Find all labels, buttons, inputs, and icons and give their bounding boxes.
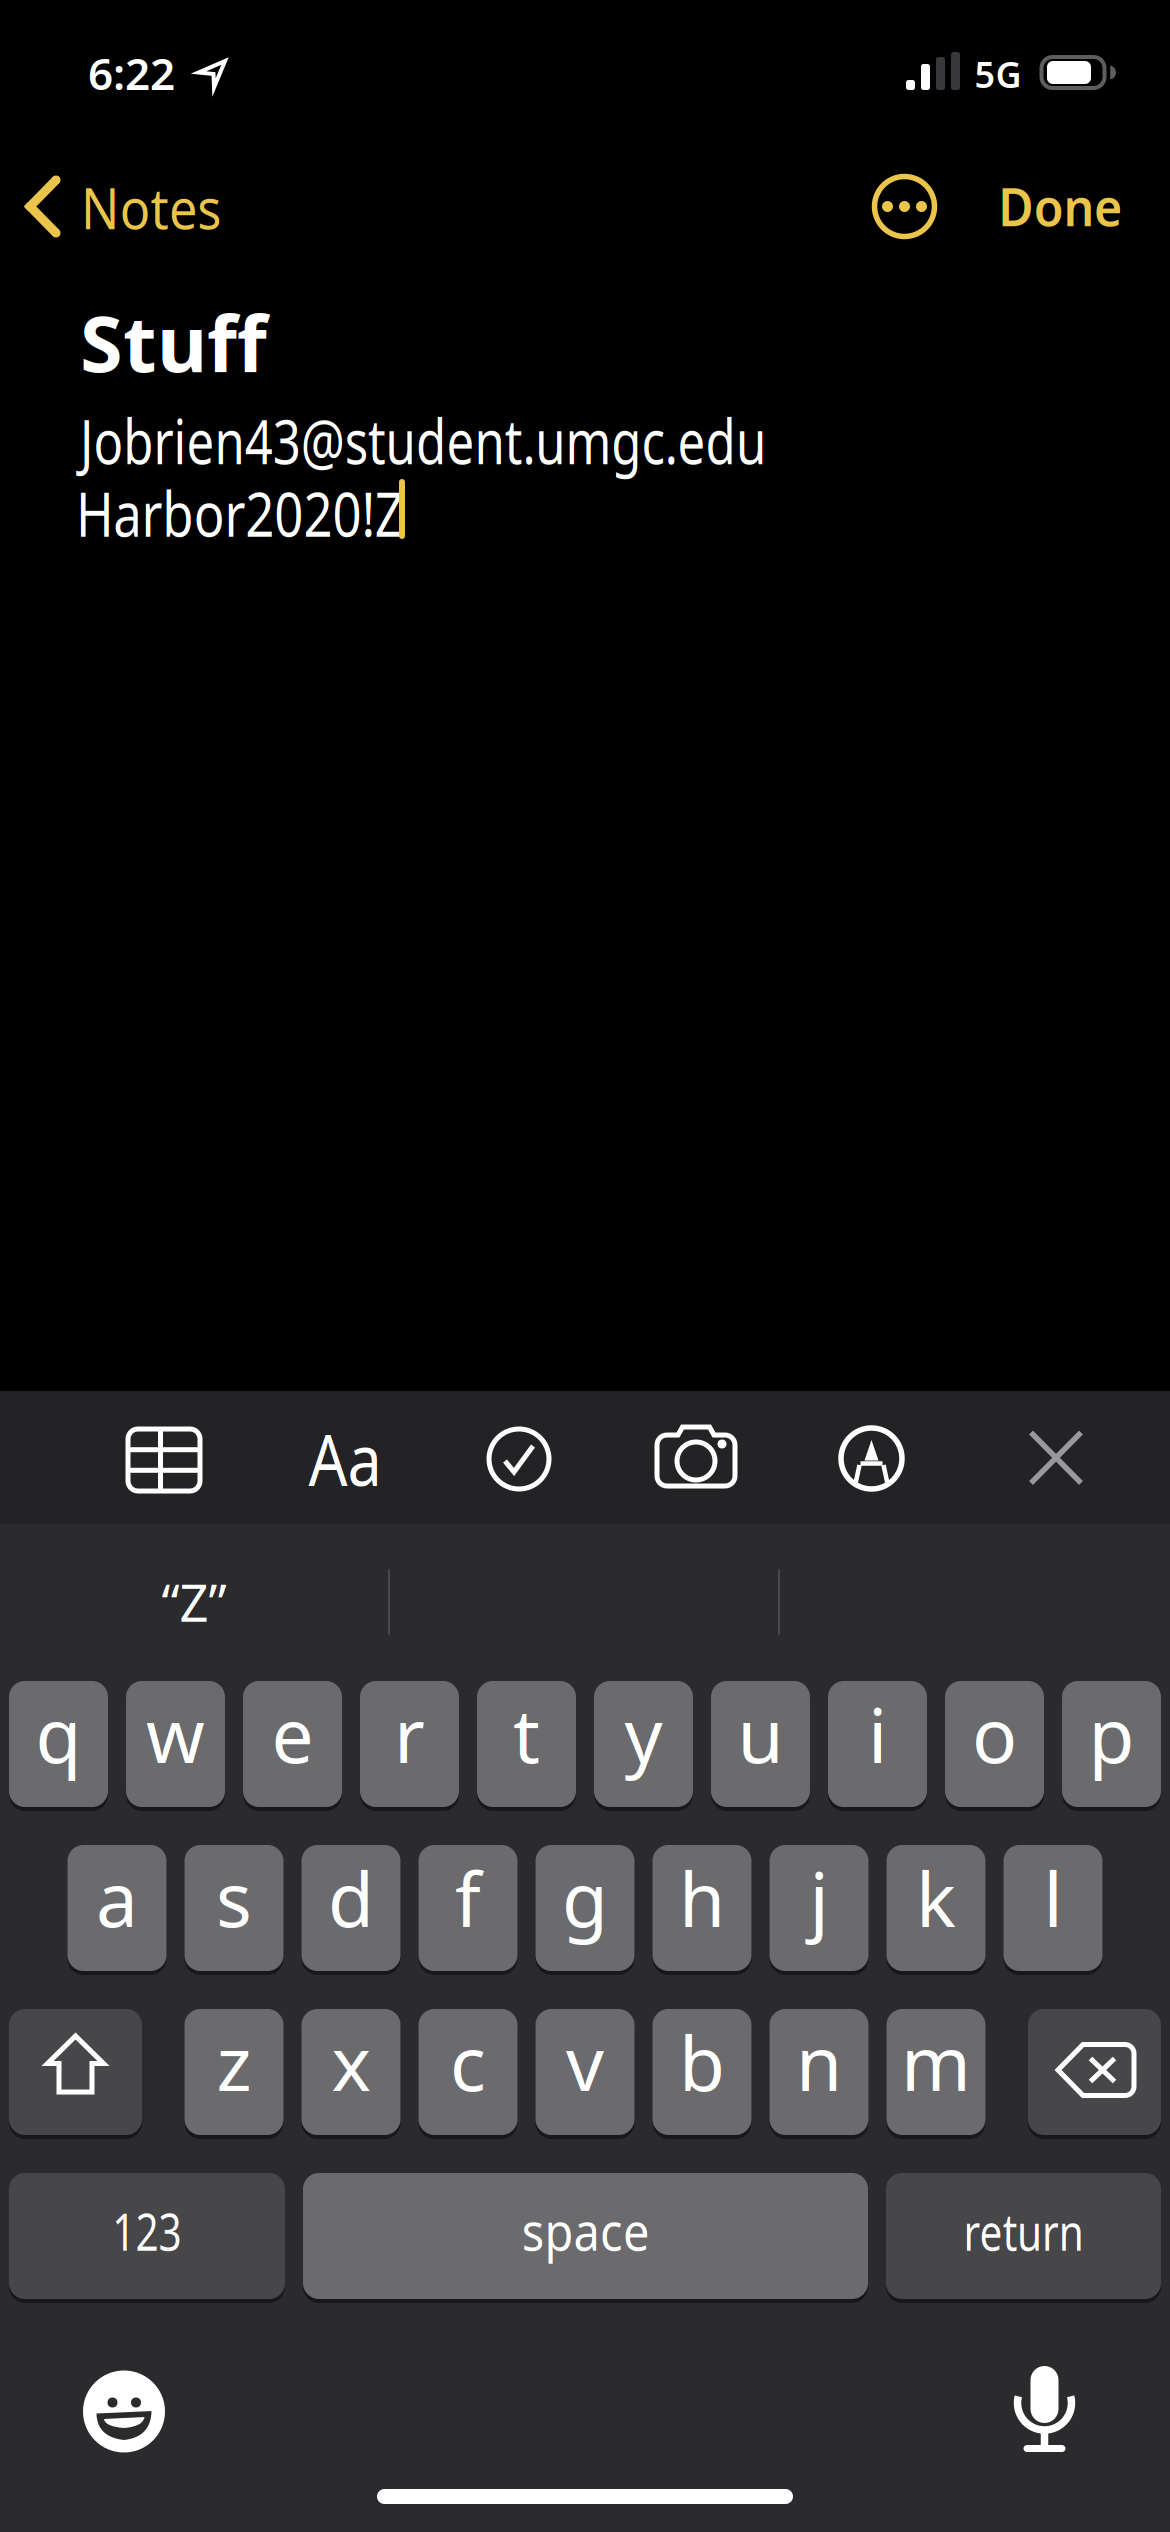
button[interactable]: l (1003, 1845, 1102, 1971)
button[interactable]: b (652, 2009, 751, 2135)
button[interactable]: Emoji (74, 2361, 174, 2461)
button[interactable]: p (1062, 1681, 1161, 1807)
button[interactable]: Format text (285, 1413, 405, 1503)
button[interactable]: u (711, 1681, 810, 1807)
button[interactable]: a (67, 1845, 166, 1971)
button[interactable]: s (184, 1845, 283, 1971)
button[interactable]: Dictate (989, 2353, 1099, 2463)
button[interactable]: k (886, 1845, 985, 1971)
button[interactable]: v (535, 2009, 634, 2135)
staticText: x (331, 2012, 370, 2112)
staticText: Aa (302, 1410, 388, 1506)
button[interactable]: y (594, 1681, 693, 1807)
button[interactable]: Done (862, 171, 1122, 241)
button[interactable]: space (303, 2173, 868, 2299)
button[interactable]: Back to Notes (10, 161, 270, 251)
button[interactable]: More options (866, 168, 942, 244)
button[interactable]: r (360, 1681, 459, 1807)
button[interactable]: g (535, 1845, 634, 1971)
staticText: d (328, 1848, 374, 1948)
staticText: u (737, 1684, 783, 1784)
staticText: Notes (81, 169, 240, 245)
staticText: Stuff (80, 291, 267, 393)
staticText: t (513, 1684, 540, 1784)
button[interactable]: m (886, 2009, 985, 2135)
button[interactable]: Dismiss keyboard (1011, 1412, 1101, 1502)
button[interactable]: w (126, 1681, 225, 1807)
staticText: return (948, 2197, 1098, 2265)
button[interactable]: o (945, 1681, 1044, 1807)
button[interactable]: i (828, 1681, 927, 1807)
button[interactable]: Markup (826, 1413, 916, 1503)
staticText: 6:22 (88, 44, 175, 102)
staticText: “Z” (161, 1568, 226, 1636)
button[interactable]: f (418, 1845, 517, 1971)
staticText: a (96, 1848, 138, 1948)
button[interactable]: Shift (9, 2009, 142, 2135)
staticText: r (394, 1684, 425, 1784)
staticText: k (916, 1848, 956, 1948)
button[interactable]: z (184, 2009, 283, 2135)
staticText: l (1043, 1848, 1062, 1948)
button[interactable]: Camera (646, 1413, 746, 1503)
button[interactable]: d (301, 1845, 400, 1971)
button[interactable]: return (886, 2173, 1161, 2299)
staticText: i (868, 1684, 887, 1784)
staticText: e (271, 1684, 313, 1784)
staticText: z (216, 2012, 251, 2112)
button[interactable]: n (769, 2009, 868, 2135)
staticText: o (972, 1684, 1017, 1784)
staticText: f (455, 1848, 481, 1948)
button[interactable]: 123 (9, 2173, 285, 2299)
button[interactable]: j (769, 1845, 868, 1971)
staticText: g (562, 1848, 608, 1948)
button[interactable]: Insert table (119, 1415, 209, 1505)
button[interactable]: t (477, 1681, 576, 1807)
staticText: v (566, 2012, 604, 2112)
button[interactable]: Checklist (474, 1414, 564, 1504)
staticText: Done (989, 171, 1122, 241)
staticText: Jobrien43@student.umgc.edu (80, 400, 938, 481)
button[interactable]: h (652, 1845, 751, 1971)
button[interactable]: c (418, 2009, 517, 2135)
staticText: s (216, 1848, 252, 1948)
staticText: b (679, 2012, 725, 2112)
button[interactable]: x (301, 2009, 400, 2135)
staticText: space (513, 2195, 658, 2265)
staticText: n (796, 2012, 842, 2112)
staticText: w (146, 1684, 205, 1784)
staticText: h (679, 1848, 725, 1948)
staticText: q (35, 1684, 81, 1784)
staticText: c (450, 2012, 486, 2112)
staticText: Harbor2020!Z (76, 472, 471, 554)
button[interactable]: q (9, 1681, 108, 1807)
button[interactable]: Delete (1028, 2009, 1161, 2135)
button[interactable]: e (243, 1681, 342, 1807)
staticText: m (901, 2012, 971, 2112)
staticText: j (809, 1848, 828, 1948)
staticText: p (1088, 1684, 1134, 1784)
staticText: 123 (103, 2197, 190, 2265)
button[interactable]: “Z” (0, 1532, 388, 1672)
staticText: y (624, 1684, 662, 1784)
staticText: 5G (974, 50, 1021, 98)
